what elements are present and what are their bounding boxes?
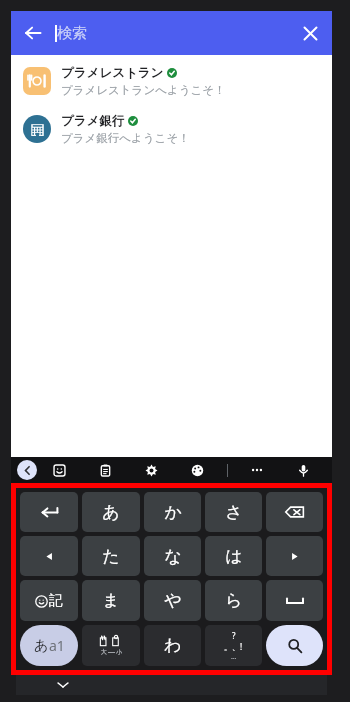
button[interactable]: か xyxy=(144,492,201,532)
button[interactable]: Move right xyxy=(266,536,323,576)
button[interactable]: Search xyxy=(266,625,323,666)
staticText: 大 xyxy=(101,648,107,656)
staticText: プラメレストラン xyxy=(61,65,164,81)
other: Undo xyxy=(39,502,59,522)
staticText: や xyxy=(164,590,182,611)
button[interactable]: Space xyxy=(266,580,323,621)
button[interactable]: Undo xyxy=(20,492,78,532)
staticText: ま xyxy=(102,590,120,611)
button[interactable]: や xyxy=(144,580,201,621)
button[interactable]: さ xyxy=(205,492,262,532)
staticText: プラメ銀行へようこそ！ xyxy=(61,131,190,145)
other: Move left xyxy=(44,551,55,562)
staticText: わ xyxy=(164,635,182,656)
staticText: ? xyxy=(232,630,236,641)
staticText: か xyxy=(164,502,182,523)
staticText: ! xyxy=(240,641,243,652)
button[interactable]: は xyxy=(205,536,262,576)
button[interactable]: Dakuten and small kana xyxy=(82,625,140,666)
staticText: あ xyxy=(34,637,49,655)
other: Dakuten and small kana xyxy=(82,625,140,666)
staticText: 小 xyxy=(116,648,122,656)
staticText: 検索 xyxy=(57,24,87,43)
button[interactable]: 記 xyxy=(20,580,78,621)
staticText: プラメレストランへようこそ！ xyxy=(61,83,226,97)
button[interactable]: プラメ銀行 xyxy=(11,109,332,149)
button[interactable]: な xyxy=(144,536,201,576)
button[interactable]: あ xyxy=(20,625,78,666)
button[interactable]: Voice input xyxy=(280,457,326,483)
other: Move right xyxy=(289,551,300,562)
button[interactable]: Back xyxy=(17,460,37,480)
button[interactable]: Back xyxy=(11,11,55,55)
staticText: 。 xyxy=(224,642,232,652)
button[interactable]: Stickers xyxy=(37,457,82,483)
staticText: 、 xyxy=(232,642,240,652)
staticText: … xyxy=(231,652,237,662)
button[interactable]: た xyxy=(82,536,140,576)
button[interactable]: あ xyxy=(82,492,140,532)
staticText: な xyxy=(164,546,182,567)
other: Backspace xyxy=(284,501,306,523)
staticText: た xyxy=(102,546,120,567)
button[interactable]: Clear xyxy=(288,11,332,55)
staticText: a1 xyxy=(49,636,65,655)
other: Punctuation xyxy=(205,625,262,666)
button[interactable]: Clipboard xyxy=(82,457,128,483)
staticText: ら xyxy=(225,590,243,611)
button[interactable]: Hide keyboard xyxy=(16,675,327,695)
button[interactable]: Themes xyxy=(174,457,220,483)
staticText: プラメ銀行 xyxy=(61,113,125,129)
button[interactable]: Move left xyxy=(20,536,78,576)
other: Search xyxy=(287,638,303,654)
staticText: あ xyxy=(102,502,120,523)
button[interactable]: わ xyxy=(144,625,201,666)
button[interactable]: Backspace xyxy=(266,492,323,532)
staticText: 記 xyxy=(49,592,63,610)
button[interactable]: Punctuation xyxy=(205,625,262,666)
staticText: さ xyxy=(225,502,243,523)
button[interactable]: ら xyxy=(205,580,262,621)
button[interactable]: Settings xyxy=(128,457,174,483)
button[interactable]: ま xyxy=(82,580,140,621)
button[interactable]: More options xyxy=(234,457,280,483)
other: Space xyxy=(285,596,305,606)
staticText: は xyxy=(225,546,243,567)
button[interactable]: プラメレストラン xyxy=(11,61,332,101)
